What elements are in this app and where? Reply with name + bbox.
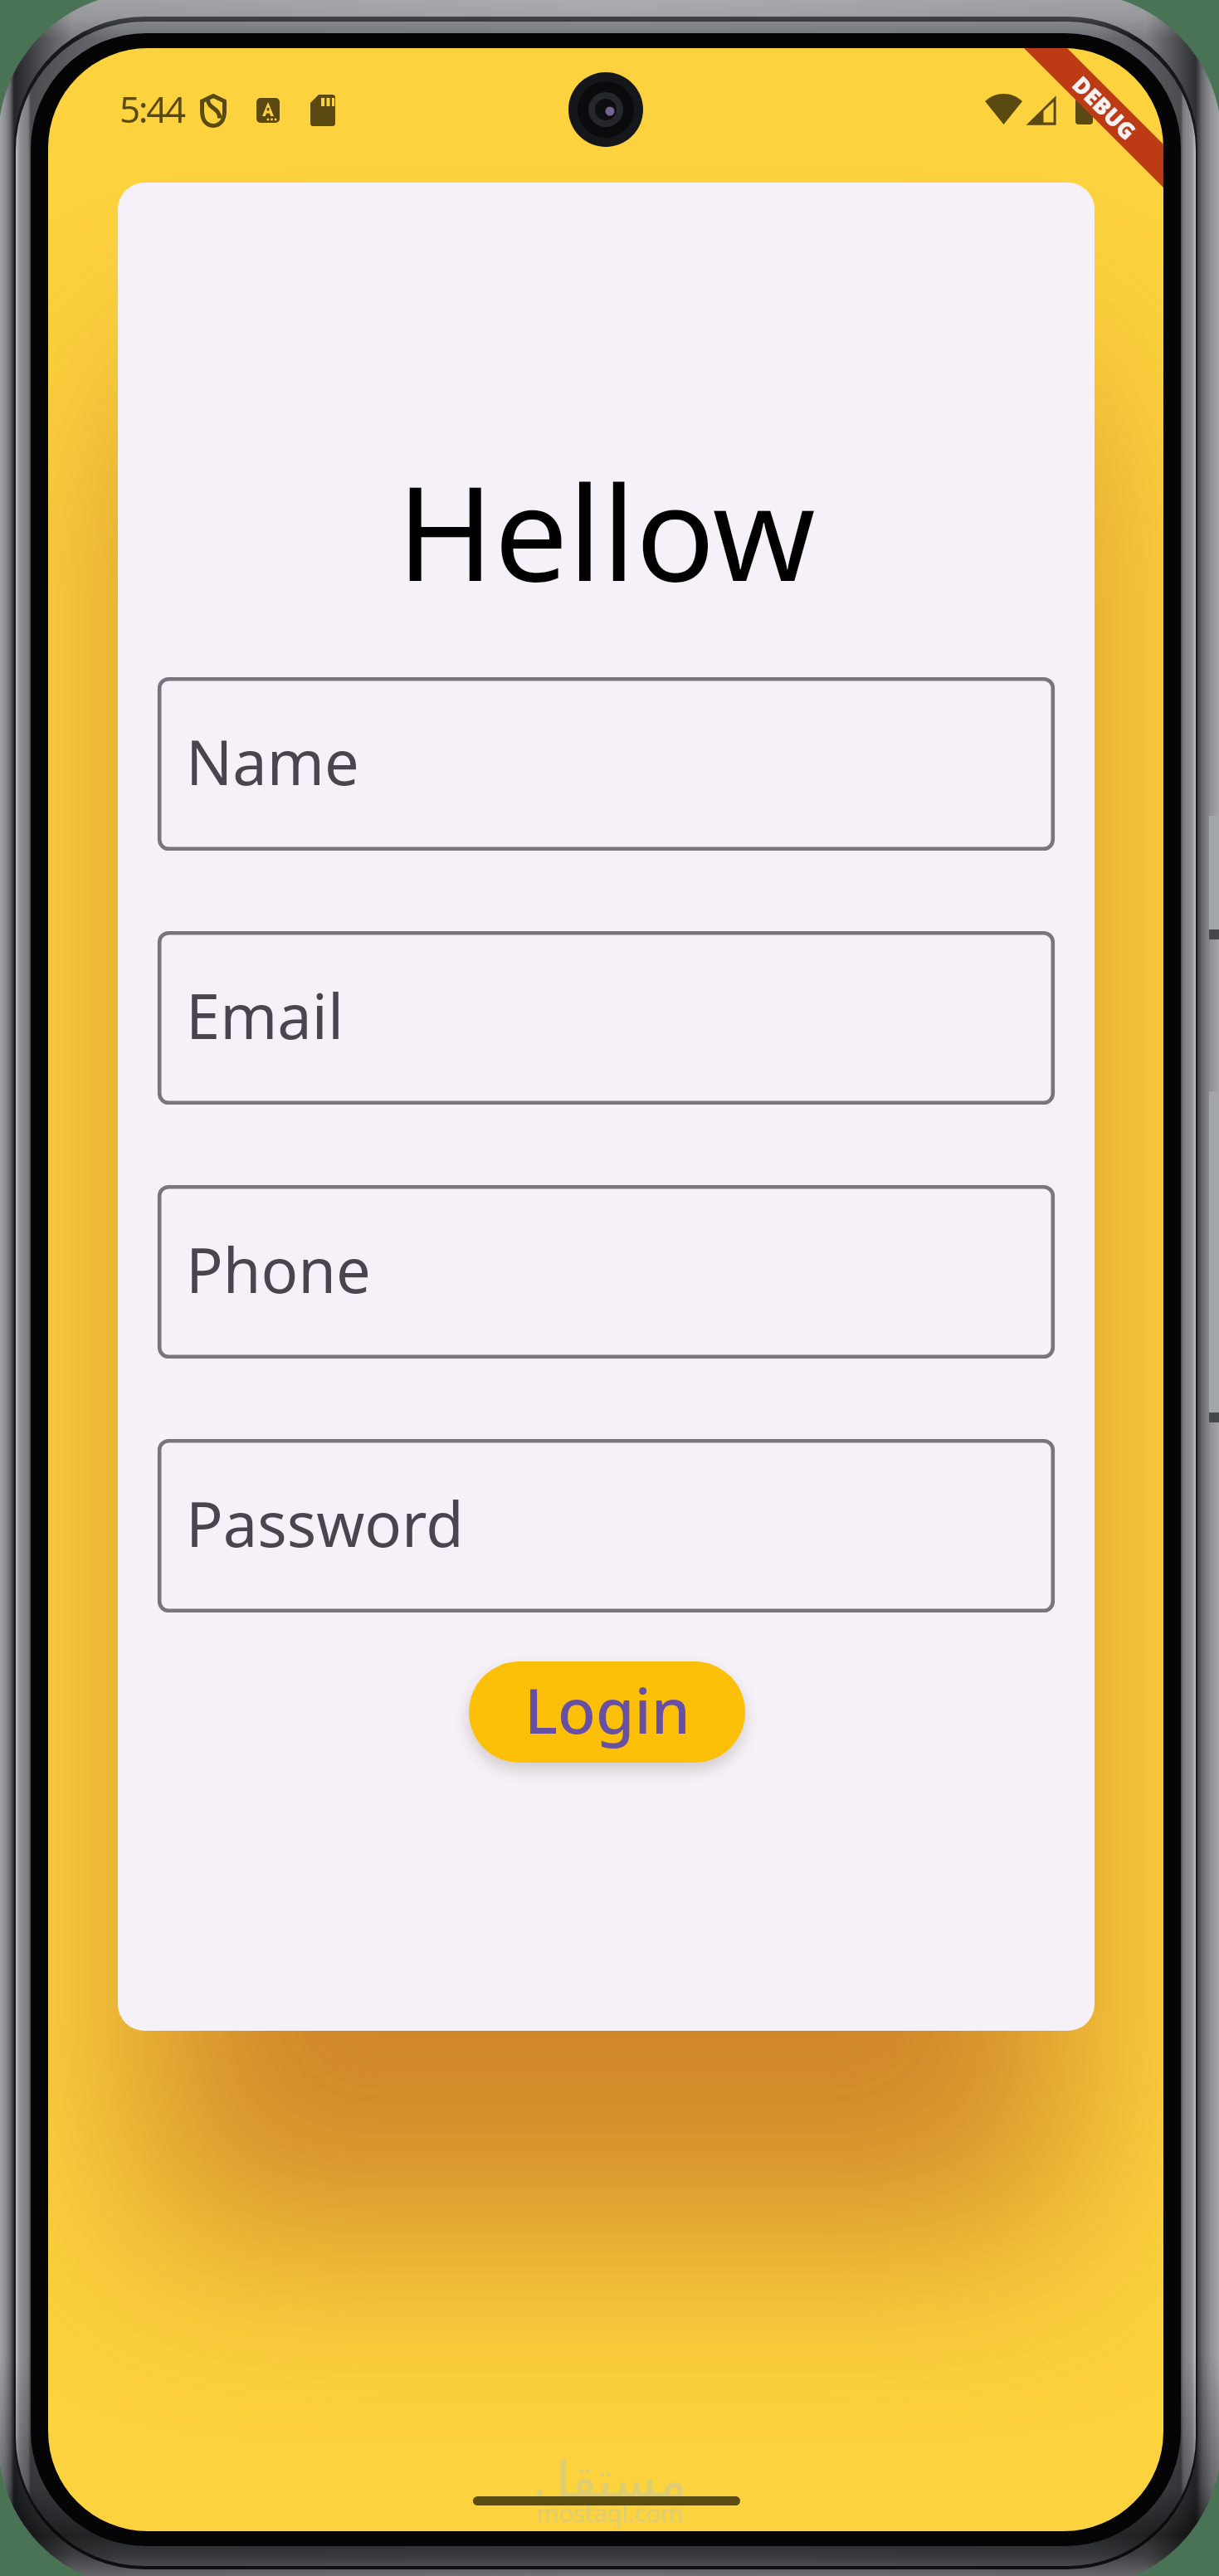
staticText: Hellow [118, 441, 1095, 619]
button[interactable]: Login [469, 1661, 745, 1763]
staticText: Name [186, 720, 359, 803]
staticText: Password [186, 1481, 464, 1565]
staticText: 5:44 [119, 84, 184, 134]
button[interactable]: Phone input field [158, 1185, 1055, 1359]
staticText: مستقل [494, 2450, 726, 2510]
button[interactable]: Email input field [158, 931, 1055, 1105]
button[interactable]: Name input field [158, 677, 1055, 851]
staticText: Email [186, 973, 344, 1057]
staticText: DEBUG [1066, 69, 1143, 146]
staticText: Phone [186, 1227, 371, 1311]
staticText: Login [524, 1667, 690, 1752]
button[interactable]: Password input field [158, 1439, 1055, 1612]
staticText: mostaql.com [494, 2496, 726, 2529]
